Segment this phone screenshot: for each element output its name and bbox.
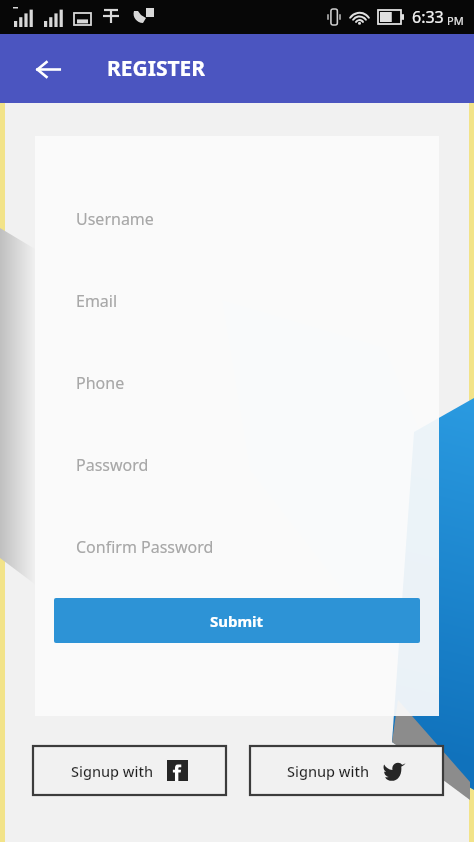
other: Facebook	[167, 760, 188, 781]
staticText: Signup with	[71, 761, 154, 781]
other: Twitter	[383, 759, 406, 782]
staticText: Submit	[210, 611, 264, 631]
staticText: Confirm Password	[76, 536, 214, 558]
staticText: Phone	[76, 372, 125, 394]
staticText: PM	[447, 13, 464, 28]
staticText: Username	[76, 208, 154, 230]
button[interactable]: Signup with	[250, 746, 443, 795]
staticText: Signup with	[287, 761, 370, 781]
button[interactable]: Back	[26, 47, 70, 91]
staticText: Password	[76, 454, 149, 476]
staticText: Email	[76, 290, 118, 312]
staticText: 6:33	[412, 6, 444, 28]
button[interactable]: Submit	[54, 598, 420, 643]
staticText: REGISTER	[107, 54, 206, 83]
button[interactable]: Signup with	[33, 746, 226, 795]
